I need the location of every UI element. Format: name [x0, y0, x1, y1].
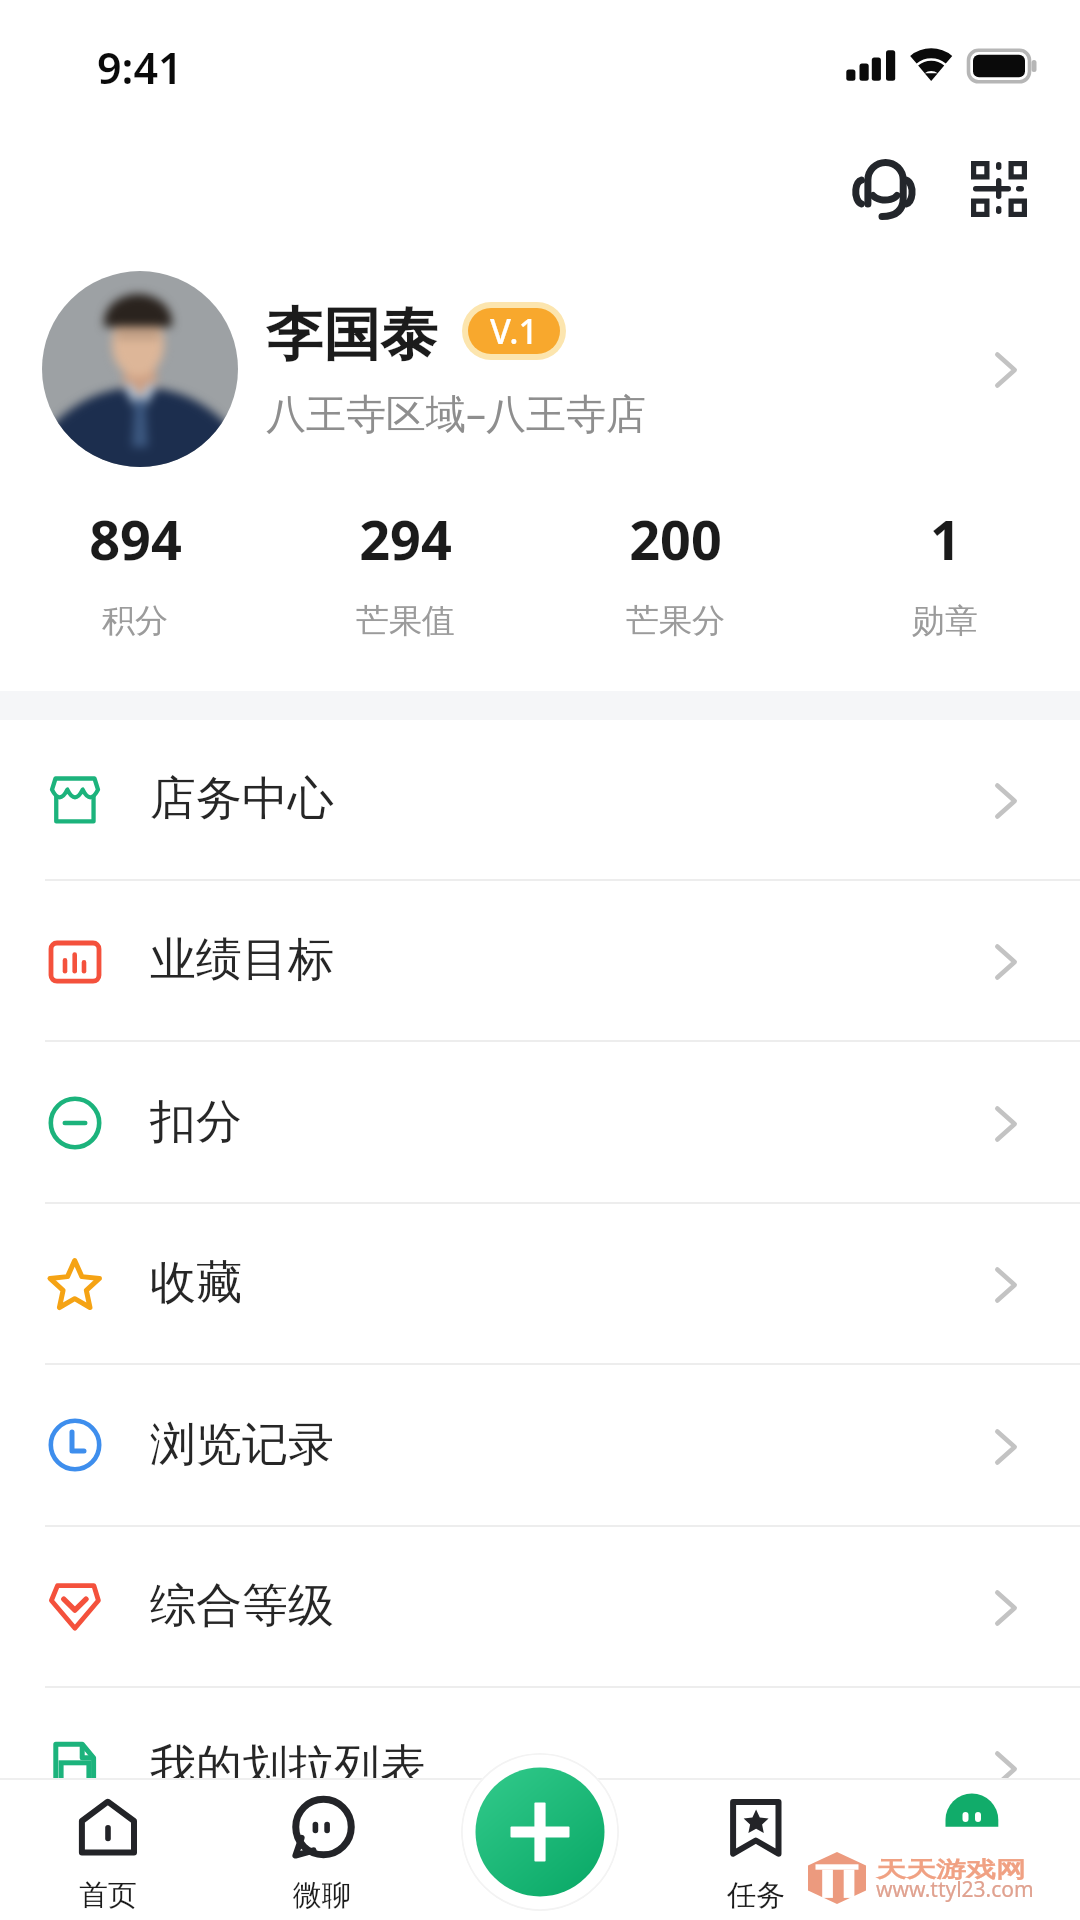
staticText: 芒果值	[356, 600, 455, 642]
staticText: 1	[930, 502, 961, 576]
staticText: 9:41	[97, 38, 183, 97]
button[interactable]: 扣分	[0, 1041, 1080, 1202]
staticText: 首页	[79, 1877, 137, 1914]
staticText: 李国泰	[266, 299, 437, 371]
button[interactable]: 我的划拉列表	[0, 1686, 1080, 1847]
button[interactable]: 首页	[0, 1778, 216, 1920]
staticText: 八王寺区域–八王寺店	[266, 385, 646, 440]
staticText: 200	[629, 502, 722, 576]
button[interactable]: 李国泰	[0, 255, 1080, 470]
staticText: 天天游戏网	[876, 1856, 1026, 1884]
button[interactable]: 综合等级	[0, 1525, 1080, 1686]
button[interactable]: 我的 Mine	[864, 1778, 1080, 1920]
staticText: 业绩目标	[150, 931, 334, 989]
staticText: 积分	[102, 600, 168, 642]
staticText: 综合等级	[150, 1577, 334, 1635]
staticText: 扣分	[150, 1093, 242, 1151]
button[interactable]: 894	[0, 480, 270, 660]
staticText: 我的划拉列表	[150, 1738, 426, 1796]
staticText: 收藏	[150, 1254, 242, 1312]
button[interactable]: 店务中心	[0, 718, 1080, 879]
button[interactable]: 294	[270, 480, 540, 660]
button[interactable]: 业绩目标	[0, 879, 1080, 1040]
staticText: 任务	[727, 1877, 785, 1914]
staticText: V.1	[490, 308, 538, 354]
staticText: 894	[89, 502, 182, 576]
staticText: 294	[359, 502, 452, 576]
staticText: 浏览记录	[150, 1416, 334, 1474]
button[interactable]: 任务	[648, 1778, 864, 1920]
staticText: www.ttyl23.com	[876, 1875, 1034, 1904]
staticText: 勋章	[912, 600, 978, 642]
button[interactable]: 微聊	[216, 1778, 432, 1920]
staticText: 芒果分	[626, 600, 725, 642]
staticText: 微聊	[293, 1877, 351, 1914]
button[interactable]: 收藏	[0, 1202, 1080, 1363]
button[interactable]: 浏览记录	[0, 1364, 1080, 1525]
button[interactable]: 1	[810, 480, 1080, 660]
staticText: 店务中心	[150, 770, 334, 828]
button[interactable]: Add	[461, 1753, 619, 1911]
button[interactable]: 200	[540, 480, 810, 660]
